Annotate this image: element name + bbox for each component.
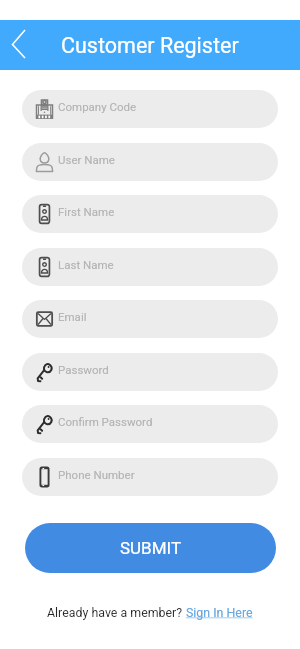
staticText: Confirm Password	[58, 415, 153, 428]
staticText: User Name	[58, 153, 115, 166]
button[interactable]: User Name	[22, 143, 278, 181]
staticText: Password	[58, 363, 109, 376]
button[interactable]: Password	[22, 353, 278, 391]
staticText: Phone Number	[58, 468, 135, 481]
button[interactable]: Back	[0, 20, 38, 70]
staticText: SUBMIT	[120, 538, 182, 558]
button[interactable]: SUBMIT	[25, 523, 276, 573]
staticText: First Name	[58, 205, 115, 218]
button[interactable]: First Name	[22, 195, 278, 233]
staticText: Already have a member?	[47, 605, 186, 620]
button[interactable]: Email	[22, 300, 278, 338]
button[interactable]: Last Name	[22, 248, 278, 286]
button[interactable]: Phone Number	[22, 458, 278, 496]
staticText: Email	[58, 310, 87, 323]
button[interactable]: Confirm Password	[22, 405, 278, 443]
staticText: Company Code	[58, 100, 137, 113]
staticText: Last Name	[58, 258, 114, 271]
button[interactable]: Company Code	[22, 90, 278, 128]
button[interactable]: Sign In Here	[186, 605, 253, 620]
staticText: Customer Register	[61, 33, 239, 58]
